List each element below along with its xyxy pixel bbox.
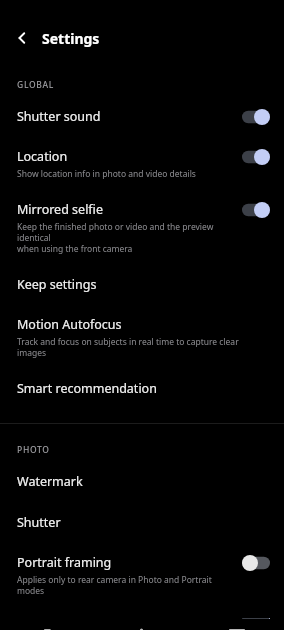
button[interactable]: Remove moles <box>0 607 284 630</box>
button[interactable]: Mirrored selfie <box>0 191 284 265</box>
staticText: Keep settings <box>17 276 97 293</box>
staticText: Track and focus on subjects in real time… <box>17 336 239 358</box>
button[interactable]: Toggle <box>242 149 270 165</box>
button[interactable]: Back <box>8 24 36 52</box>
button[interactable]: Toggle <box>242 202 270 218</box>
staticText: Shutter <box>17 514 61 531</box>
staticText: Mirrored selfie <box>17 201 103 218</box>
staticText: PHOTO <box>17 444 50 456</box>
staticText: GLOBAL <box>17 79 55 91</box>
button[interactable]: Shutter sound <box>0 95 284 138</box>
staticText: Smart recommendation <box>17 380 157 397</box>
button[interactable]: Motion Autofocus <box>0 306 284 369</box>
button[interactable]: Watermark <box>0 460 284 503</box>
staticText: Keep the finished photo or video and the… <box>17 221 232 254</box>
staticText: Motion Autofocus <box>17 316 122 333</box>
staticText: Shutter sound <box>17 108 101 125</box>
staticText: Watermark <box>17 473 83 490</box>
button[interactable]: Keep settings <box>0 265 284 306</box>
staticText: Portrait framing <box>17 554 112 571</box>
staticText: Location <box>17 148 68 165</box>
button[interactable]: Toggle <box>242 109 270 125</box>
staticText: Settings <box>42 29 100 48</box>
button[interactable]: Toggle <box>242 555 270 571</box>
button[interactable]: Portrait framing <box>0 544 284 607</box>
button[interactable]: Smart recommendation <box>0 369 284 411</box>
button[interactable]: Location <box>0 138 284 191</box>
staticText: Show location info in photo and video de… <box>17 168 196 180</box>
staticText: Applies only to rear camera in Photo and… <box>17 574 232 596</box>
button[interactable]: Shutter <box>0 503 284 544</box>
button[interactable]: Toggle <box>242 618 270 619</box>
